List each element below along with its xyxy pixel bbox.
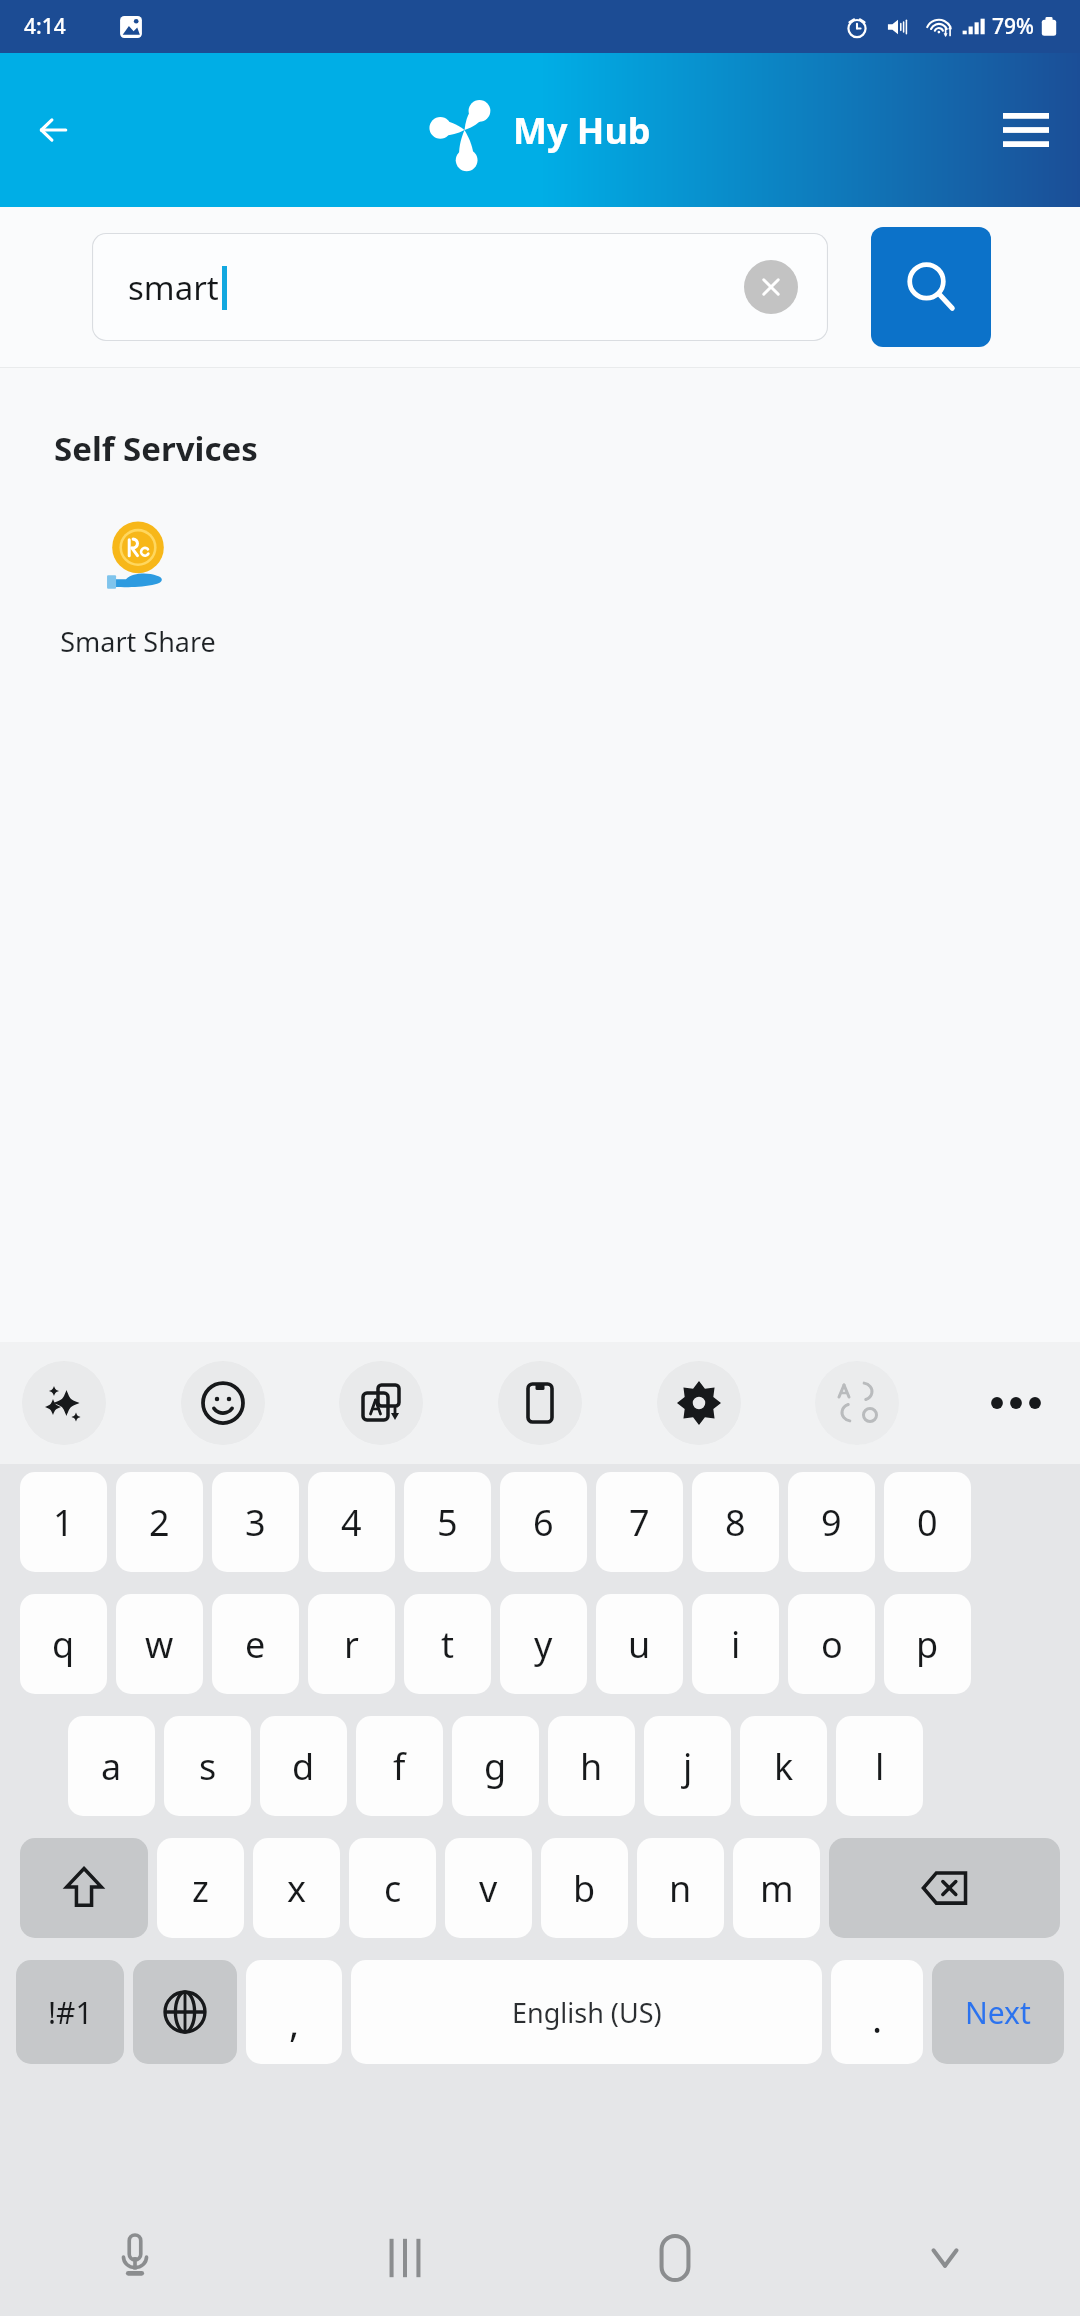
button[interactable]: 5 — [404, 1472, 491, 1572]
staticText: Next — [965, 1992, 1031, 2033]
button[interactable]: z — [157, 1838, 244, 1938]
staticText: , — [289, 1996, 300, 2048]
button[interactable]: Menu — [990, 94, 1062, 166]
button[interactable]: g — [452, 1716, 539, 1816]
button[interactable]: smart — [92, 233, 828, 341]
staticText: 3 — [245, 1498, 266, 1547]
button[interactable]: 8 — [692, 1472, 779, 1572]
staticText: f — [393, 1742, 406, 1791]
button[interactable]: l — [836, 1716, 923, 1816]
staticText: h — [580, 1742, 603, 1791]
button[interactable]: 2 — [116, 1472, 203, 1572]
button[interactable]: Home — [540, 2200, 810, 2316]
staticText: j — [683, 1742, 693, 1791]
button[interactable]: Hide keyboard — [810, 2200, 1080, 2316]
staticText: 4:14 — [24, 12, 66, 41]
button[interactable]: Smart Share — [54, 519, 222, 660]
staticText: 9 — [821, 1498, 842, 1547]
staticText: 5 — [437, 1498, 458, 1547]
button[interactable]: Text correction — [815, 1361, 899, 1445]
button[interactable]: Magic text — [22, 1361, 106, 1445]
staticText: y — [534, 1620, 553, 1669]
button[interactable]: p — [884, 1594, 971, 1694]
button[interactable]: 3 — [212, 1472, 299, 1572]
staticText: x — [287, 1864, 307, 1913]
button[interactable]: Clear text — [744, 260, 798, 314]
button[interactable]: Shift — [20, 1838, 148, 1938]
button[interactable]: Backspace — [829, 1838, 1060, 1938]
button[interactable]: d — [260, 1716, 347, 1816]
button[interactable]: h — [548, 1716, 635, 1816]
button[interactable]: Back — [16, 92, 92, 168]
button[interactable]: Comma — [246, 1960, 342, 2064]
button[interactable]: j — [644, 1716, 731, 1816]
staticText: s — [199, 1742, 217, 1791]
button[interactable]: x — [253, 1838, 340, 1938]
staticText: smart — [128, 265, 219, 310]
button[interactable]: c — [349, 1838, 436, 1938]
staticText: b — [573, 1864, 596, 1913]
staticText: e — [245, 1620, 266, 1669]
staticText: 4 — [341, 1498, 362, 1547]
button[interactable]: w — [116, 1594, 203, 1694]
staticText: c — [384, 1864, 402, 1913]
staticText: a — [101, 1742, 122, 1791]
button[interactable]: u — [596, 1594, 683, 1694]
button[interactable]: Clipboard — [498, 1361, 582, 1445]
button[interactable]: t — [404, 1594, 491, 1694]
button[interactable]: Keyboard settings — [657, 1361, 741, 1445]
button[interactable]: y — [500, 1594, 587, 1694]
button[interactable]: Voice input — [0, 2200, 270, 2316]
staticText: 7 — [629, 1498, 650, 1547]
staticText: Smart Share — [60, 623, 216, 660]
button[interactable]: Emoji — [181, 1361, 265, 1445]
button[interactable]: Space — [351, 1960, 822, 2064]
button[interactable]: b — [541, 1838, 628, 1938]
button[interactable]: Recent apps — [270, 2200, 540, 2316]
staticText: o — [821, 1620, 843, 1669]
button[interactable]: 4 — [308, 1472, 395, 1572]
staticText: z — [192, 1864, 209, 1913]
button[interactable]: 9 — [788, 1472, 875, 1572]
button[interactable]: Next — [932, 1960, 1064, 2064]
button[interactable]: s — [164, 1716, 251, 1816]
button[interactable]: a — [68, 1716, 155, 1816]
staticText: 6 — [533, 1498, 554, 1547]
staticText: r — [344, 1620, 359, 1669]
button[interactable]: 0 — [884, 1472, 971, 1572]
button[interactable]: k — [740, 1716, 827, 1816]
button[interactable]: Change language — [133, 1960, 237, 2064]
staticText: 2 — [149, 1498, 170, 1547]
button[interactable]: n — [637, 1838, 724, 1938]
button[interactable]: r — [308, 1594, 395, 1694]
button[interactable]: 1 — [20, 1472, 107, 1572]
button[interactable]: More options — [974, 1361, 1058, 1445]
button[interactable]: Search — [871, 227, 991, 347]
staticText: w — [145, 1620, 174, 1669]
button[interactable]: !#1 — [16, 1960, 124, 2064]
button[interactable]: i — [692, 1594, 779, 1694]
button[interactable]: o — [788, 1594, 875, 1694]
button[interactable]: m — [733, 1838, 820, 1938]
staticText: i — [731, 1620, 741, 1669]
button[interactable]: 6 — [500, 1472, 587, 1572]
staticText: v — [479, 1864, 498, 1913]
staticText: 8 — [725, 1498, 746, 1547]
button[interactable]: q — [20, 1594, 107, 1694]
staticText: Self Services — [54, 426, 258, 471]
staticText: p — [916, 1620, 939, 1669]
staticText: 0 — [917, 1498, 938, 1547]
staticText: !#1 — [48, 1992, 93, 2033]
staticText: g — [484, 1742, 507, 1791]
button[interactable]: Translate — [339, 1361, 423, 1445]
button[interactable]: e — [212, 1594, 299, 1694]
button[interactable]: Period — [831, 1960, 923, 2064]
button[interactable]: f — [356, 1716, 443, 1816]
button[interactable]: 7 — [596, 1472, 683, 1572]
button[interactable]: v — [445, 1838, 532, 1938]
staticText: . — [872, 1992, 883, 2044]
staticText: 79% — [992, 12, 1034, 41]
staticText: m — [760, 1864, 794, 1913]
staticText: t — [441, 1620, 454, 1669]
staticText: My Hub — [513, 106, 651, 155]
